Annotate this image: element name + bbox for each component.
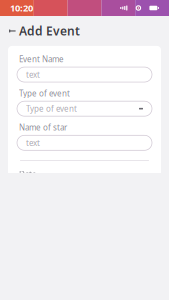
button[interactable]: text bbox=[8, 135, 161, 150]
button[interactable]: Type of event bbox=[8, 101, 161, 116]
staticText: Type of event bbox=[19, 88, 70, 99]
staticText: text bbox=[26, 137, 40, 148]
staticText: Date bbox=[19, 169, 37, 180]
staticText: Add Event bbox=[19, 23, 80, 39]
button[interactable]: text bbox=[8, 67, 161, 82]
button[interactable]: Add Event bbox=[0, 16, 89, 46]
staticText: text bbox=[26, 69, 40, 80]
staticText: Type of event bbox=[26, 103, 77, 114]
staticText: 10:20 bbox=[10, 2, 33, 14]
staticText: Name of star bbox=[19, 122, 67, 133]
staticText: Event Name bbox=[19, 54, 64, 64]
